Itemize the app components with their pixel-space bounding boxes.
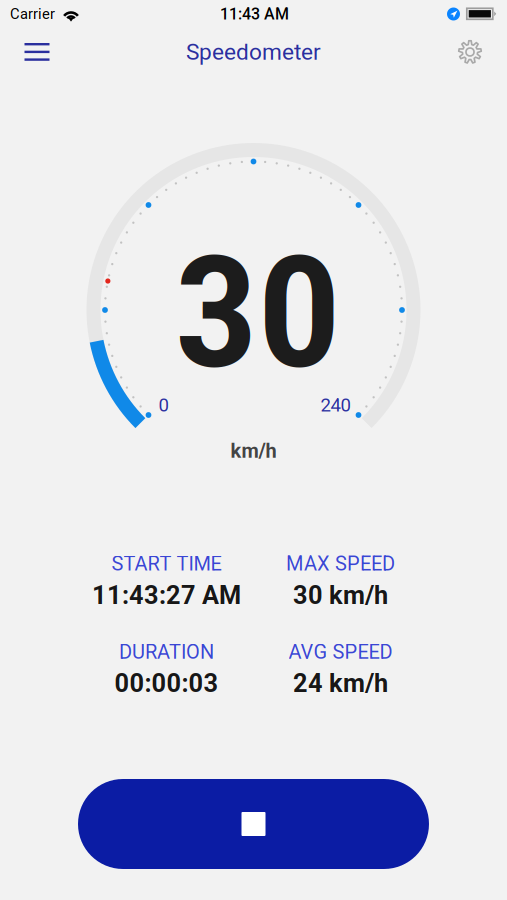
staticText: 00:00:03 [114,669,218,698]
button[interactable]: Settings [445,30,495,74]
staticText: Speedometer [186,39,321,65]
staticText: km/h [230,439,276,463]
staticText: 11:43 AM [220,5,289,23]
staticText: 11:43:27 AM [92,580,241,610]
staticText: MAX SPEED [286,552,395,575]
staticText: 24 km/h [293,669,388,698]
staticText: 30 [175,224,341,404]
staticText: DURATION [119,640,214,663]
staticText: Carrier [10,5,55,23]
staticText: 30 km/h [293,580,388,610]
staticText: START TIME [111,552,221,575]
button[interactable]: Menu [12,30,62,74]
staticText: 0 [158,394,168,416]
button[interactable]: Stop [78,779,429,869]
staticText: AVG SPEED [288,640,392,663]
staticText: 240 [320,394,350,416]
